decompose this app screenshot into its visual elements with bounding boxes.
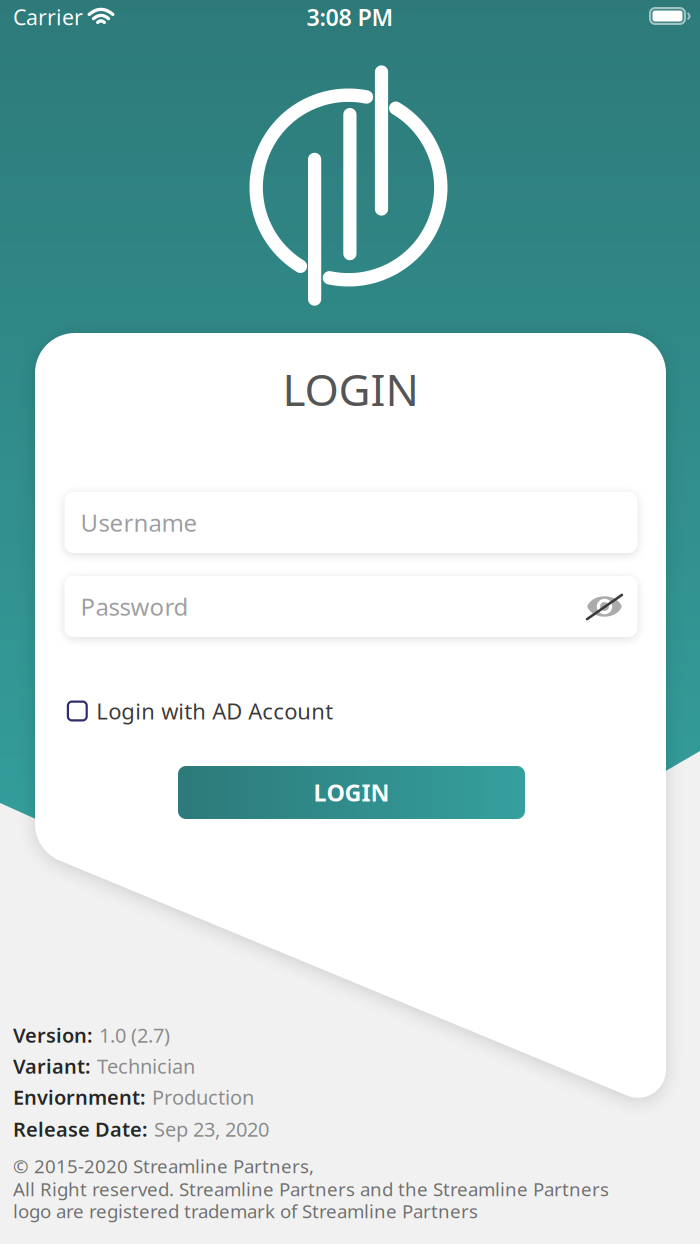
staticText: LOGIN — [282, 359, 418, 419]
staticText: Technician — [97, 1052, 195, 1080]
staticText: Enviornment: — [13, 1083, 146, 1111]
staticText: Sep 23, 2020 — [154, 1115, 269, 1143]
staticText: LOGIN — [313, 777, 389, 808]
staticText: 1.0 (2.7) — [99, 1021, 170, 1049]
button[interactable]: LOGIN — [178, 766, 525, 819]
staticText: Version: — [13, 1021, 93, 1049]
button[interactable]: Login with AD Account — [67, 694, 333, 728]
staticText: logo are registered trademark of Streaml… — [13, 1198, 478, 1224]
staticText: 3:08 PM — [306, 1, 393, 33]
staticText: © 2015-2020 Streamline Partners, — [13, 1153, 314, 1179]
button[interactable]: Show password — [586, 591, 622, 621]
staticText: Release Date: — [13, 1115, 148, 1143]
staticText: Variant: — [13, 1052, 91, 1080]
staticText: Carrier — [13, 2, 83, 32]
staticText: Username — [80, 506, 197, 539]
staticText: Password — [80, 590, 188, 623]
staticText: All Right reserved. Streamline Partners … — [13, 1176, 609, 1202]
staticText: Production — [152, 1083, 254, 1111]
staticText: Login with AD Account — [96, 696, 333, 726]
